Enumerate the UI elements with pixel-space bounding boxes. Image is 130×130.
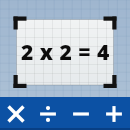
- staticText: 2 x 2 = 4: [21, 38, 110, 67]
- button[interactable]: Multiply: [0, 97, 32, 130]
- button[interactable]: 2 x 2 = 4: [0, 0, 130, 130]
- button[interactable]: Divide: [32, 97, 64, 130]
- button[interactable]: Subtract: [64, 97, 97, 130]
- button[interactable]: Add: [97, 97, 130, 130]
